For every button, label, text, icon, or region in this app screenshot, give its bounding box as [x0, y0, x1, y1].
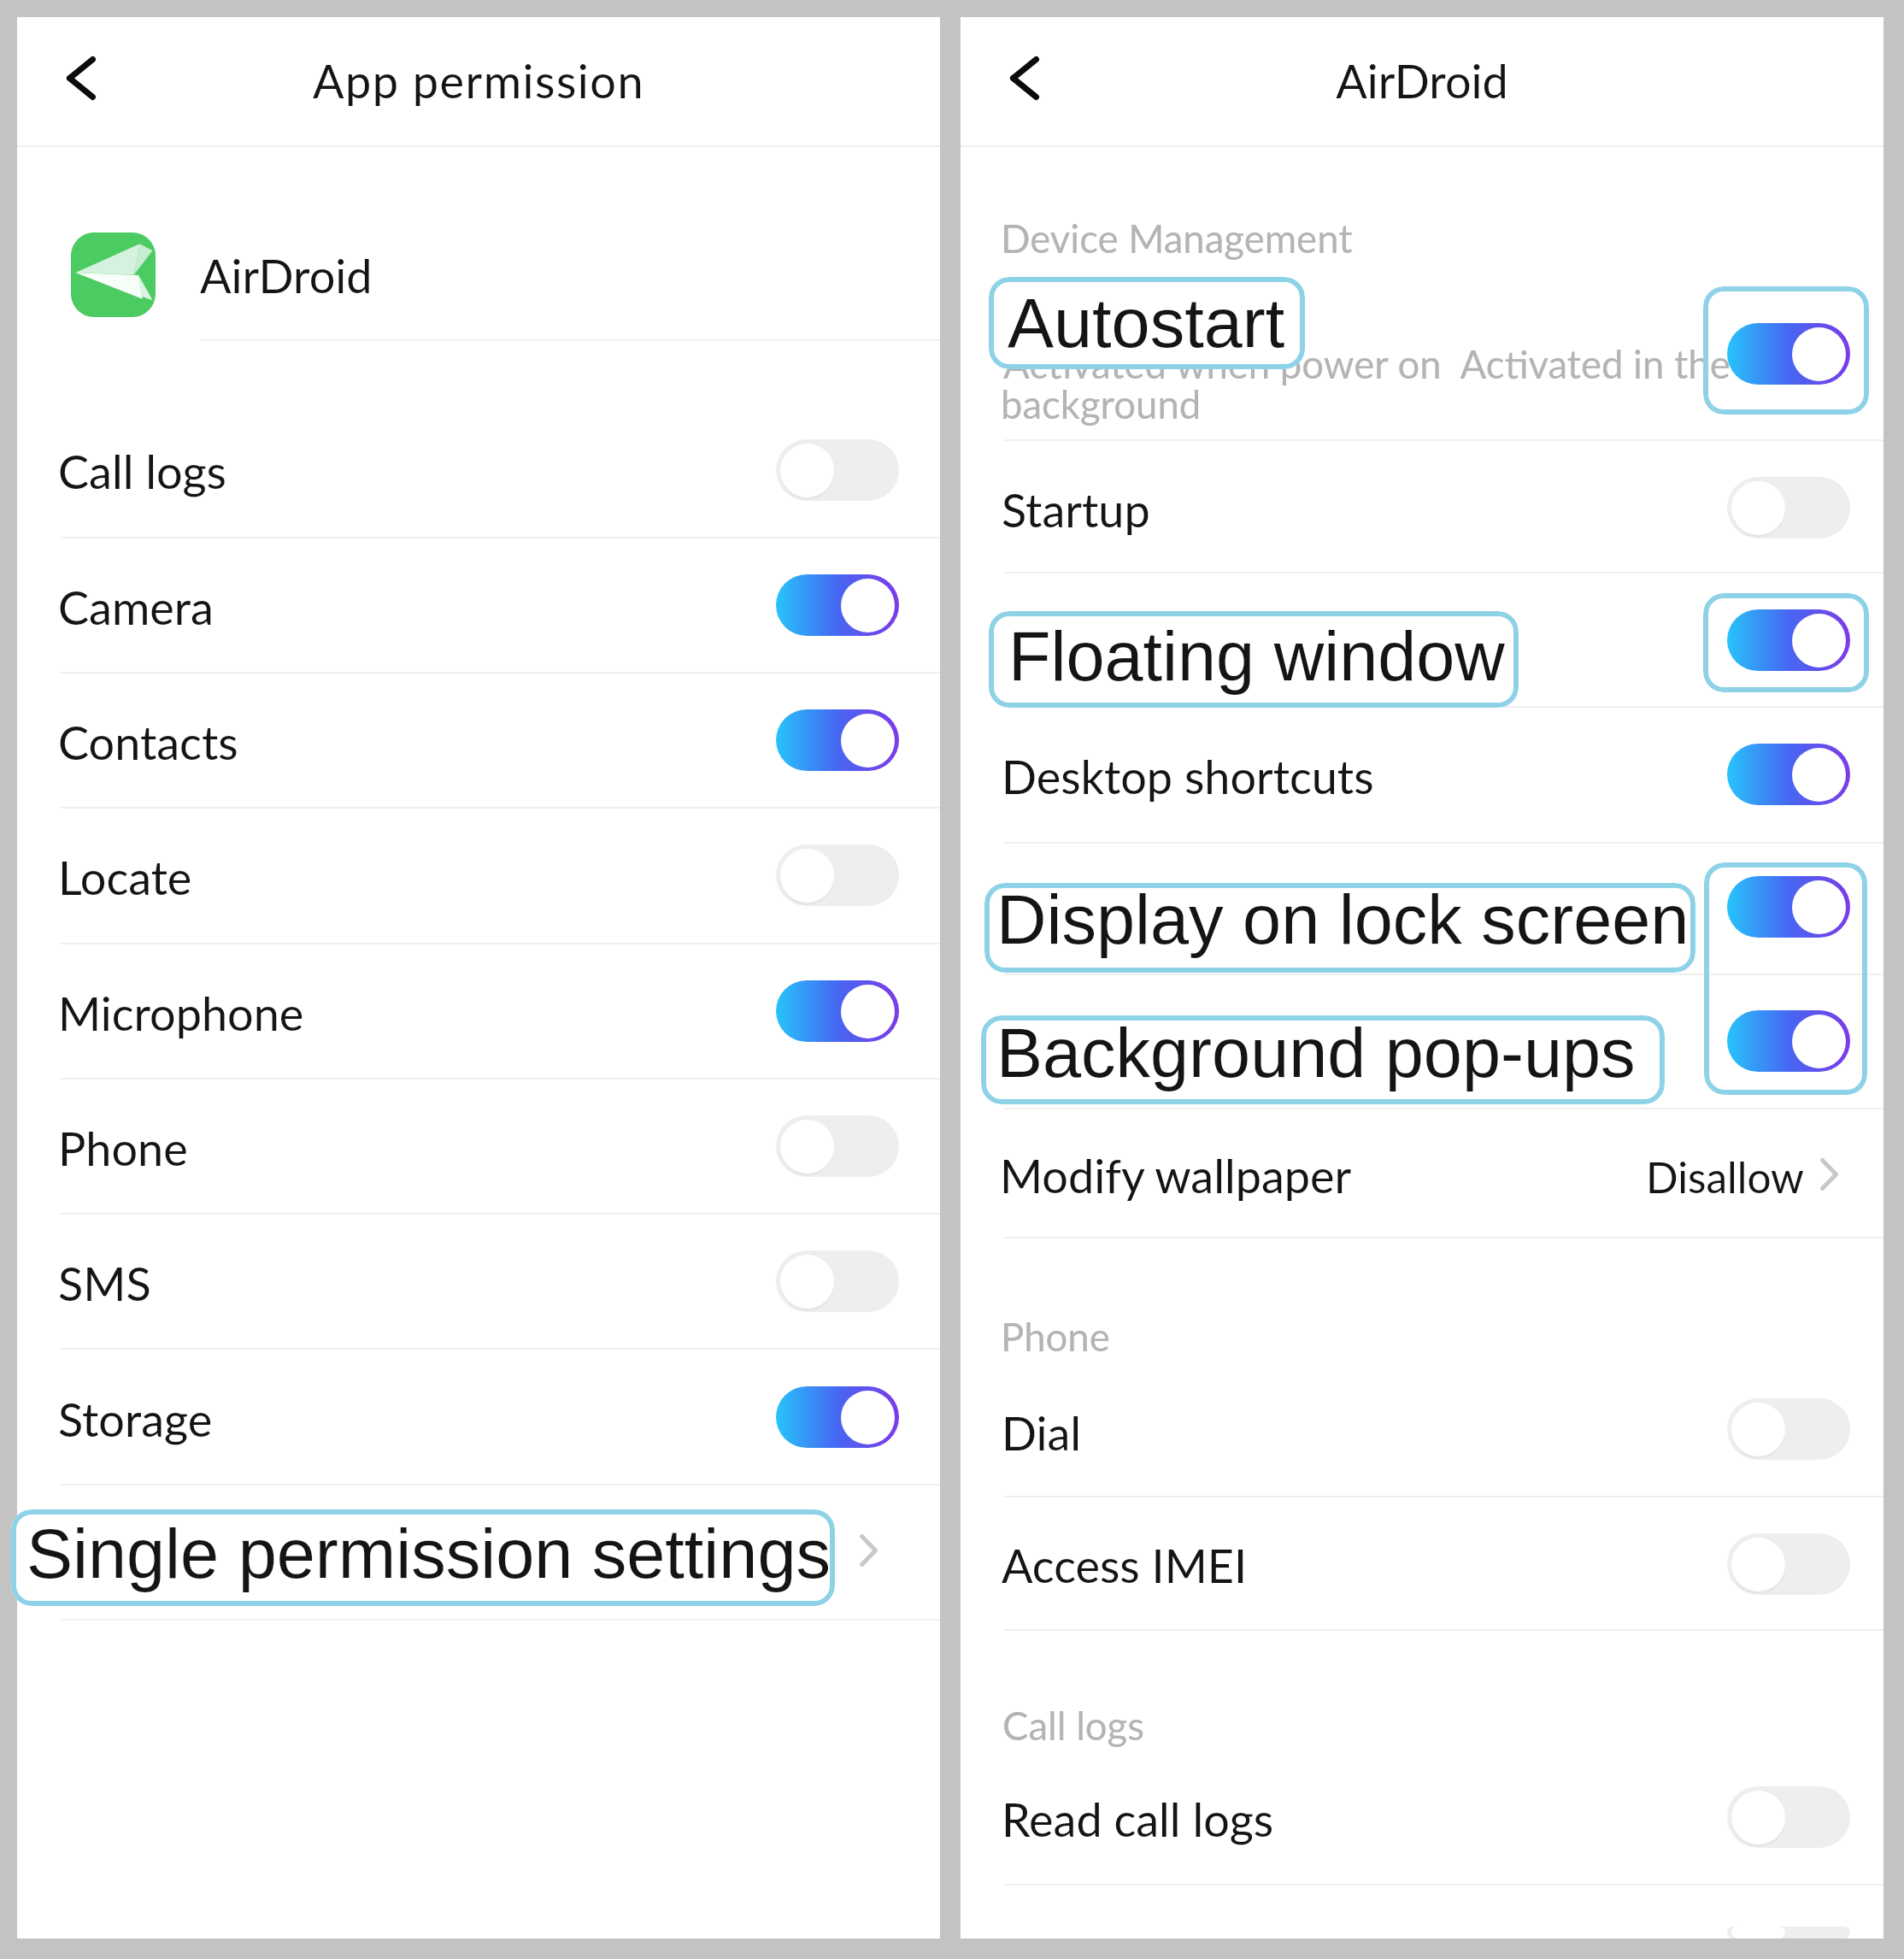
button[interactable]	[961, 573, 1883, 706]
button[interactable]: Background pop-ups on	[1727, 1010, 1850, 1072]
button[interactable]	[961, 974, 1883, 1108]
button[interactable]: Back	[984, 37, 1066, 119]
button[interactable]	[17, 537, 940, 672]
button[interactable]: Display on lock screen on	[1727, 876, 1850, 938]
button[interactable]: Microphone on	[776, 980, 899, 1042]
staticText: Single permission settings	[26, 1515, 831, 1592]
staticText: Background pop-ups	[996, 1015, 1636, 1091]
staticText: Call logs	[1002, 1702, 1144, 1749]
button[interactable]	[961, 707, 1883, 842]
button[interactable]	[961, 843, 1883, 973]
button[interactable]	[17, 1486, 940, 1621]
button[interactable]	[961, 1361, 1883, 1496]
button[interactable]	[17, 1348, 940, 1483]
button[interactable]: SMS off	[776, 1250, 899, 1312]
button[interactable]	[961, 256, 1883, 436]
staticText: Call logs	[58, 444, 226, 499]
button[interactable]: Locate off	[776, 844, 899, 906]
button[interactable]: Autostart on	[1727, 323, 1850, 385]
staticText: Desktop shortcuts	[1002, 749, 1374, 804]
button[interactable]	[17, 1213, 940, 1348]
staticText: AirDroid	[961, 53, 1883, 109]
button[interactable]: Call logs off	[776, 439, 899, 501]
staticText: App permission	[17, 53, 940, 109]
staticText: Disallow	[1646, 1151, 1805, 1202]
staticText: Access IMEI	[1002, 1538, 1248, 1593]
button[interactable]: Contacts on	[776, 709, 899, 771]
button[interactable]	[961, 1750, 1883, 1884]
button[interactable]: Camera on	[776, 574, 899, 636]
staticText: Activated when power on Activated in the	[1003, 340, 1731, 387]
staticText: Device Management	[1001, 215, 1353, 262]
staticText: Autostart	[1003, 300, 1196, 356]
button[interactable]: next off	[1727, 1927, 1850, 1938]
staticText: Contacts	[58, 715, 238, 770]
button[interactable]	[17, 943, 940, 1078]
staticText: Read call logs	[1002, 1791, 1274, 1847]
button[interactable]: AirDroid app icon	[71, 232, 156, 317]
staticText: Phone	[1001, 1313, 1110, 1360]
staticText: Autostart	[1008, 285, 1285, 362]
button[interactable]: Desktop shortcuts on	[1727, 744, 1850, 805]
staticText: Modify wallpaper	[1000, 1148, 1352, 1203]
staticText: Storage	[58, 1391, 213, 1447]
button[interactable]	[17, 672, 940, 807]
staticText: SMS	[58, 1256, 151, 1311]
button[interactable]: Access IMEI off	[1727, 1533, 1850, 1595]
button[interactable]: Startup off	[1727, 477, 1850, 538]
staticText: Camera	[58, 579, 214, 635]
staticText: Phone	[58, 1121, 188, 1176]
button[interactable]	[961, 1497, 1883, 1629]
staticText: Display on lock screen	[996, 881, 1690, 958]
staticText: Floating window	[1008, 618, 1505, 695]
staticText: Startup	[1002, 482, 1150, 538]
staticText: Microphone	[58, 985, 304, 1041]
staticText: background	[1001, 380, 1202, 427]
button[interactable]: Dial off	[1727, 1398, 1850, 1460]
button[interactable]	[961, 439, 1883, 572]
button[interactable]	[961, 1109, 1883, 1238]
button[interactable]: Read call logs off	[1727, 1786, 1850, 1848]
staticText: Dial	[1002, 1405, 1082, 1461]
staticText: Locate	[58, 850, 192, 905]
staticText: AirDroid	[200, 248, 373, 303]
button[interactable]	[17, 1078, 940, 1213]
button[interactable]	[17, 807, 940, 942]
button[interactable]: Back	[40, 37, 122, 119]
button[interactable]	[17, 401, 940, 536]
button[interactable]: Floating window on	[1727, 609, 1850, 671]
button[interactable]: Storage on	[776, 1386, 899, 1448]
button[interactable]: Phone off	[776, 1115, 899, 1177]
